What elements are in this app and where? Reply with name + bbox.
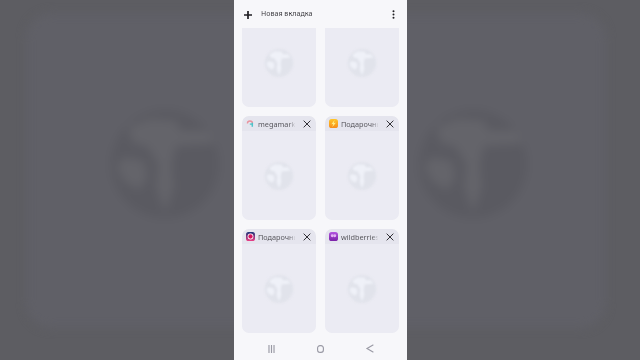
button[interactable]: Back	[345, 333, 394, 360]
staticText: Подарочные	[341, 119, 385, 129]
staticText: wildberries.ru	[341, 232, 385, 242]
button[interactable]: Подарочные	[325, 116, 399, 220]
other: Close tab	[304, 234, 310, 240]
other: Close tab	[304, 121, 310, 127]
other: Close tab	[387, 121, 393, 127]
button[interactable]: Подарочные	[242, 229, 316, 333]
button[interactable]: megamarket.ru	[242, 116, 316, 220]
button[interactable]: wildberries.ru	[325, 229, 399, 333]
button[interactable]: More options	[384, 5, 403, 24]
button[interactable]: New tab	[238, 5, 257, 24]
staticText: megamarket.ru	[258, 119, 302, 129]
button[interactable]: Recents	[247, 333, 296, 360]
other: Close tab	[387, 234, 393, 240]
staticText: Подарочные	[258, 232, 302, 242]
button[interactable]: Home	[296, 333, 345, 360]
staticText: Новая вкладка	[261, 9, 313, 19]
